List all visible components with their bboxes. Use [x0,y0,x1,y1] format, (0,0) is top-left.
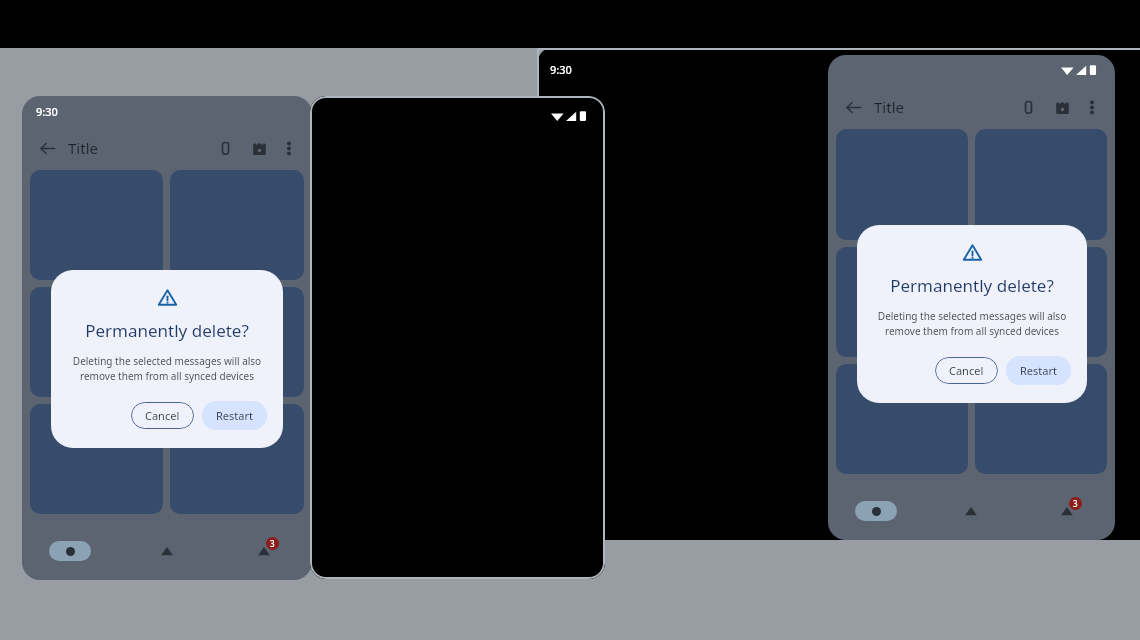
button[interactable] [975,247,1107,357]
staticText: Permanently delete? [85,319,249,342]
button[interactable]: Cancel [131,402,194,429]
staticText: Deleting the selected messages will also… [873,309,1071,338]
button[interactable]: Attach [1013,92,1043,122]
staticText: Restart [216,408,253,423]
button[interactable]: Back [838,92,868,122]
button[interactable] [975,129,1107,240]
button[interactable]: Home [22,522,118,580]
button[interactable]: Calendar [244,133,274,163]
staticText: 3 [270,538,275,549]
staticText: Permanently delete? [890,274,1054,297]
button[interactable] [836,364,968,474]
button[interactable]: More options [1079,94,1105,120]
button[interactable]: Alerts [118,522,215,580]
button[interactable] [836,129,968,240]
button[interactable] [170,287,304,397]
staticText: 9:30 [550,62,572,77]
button[interactable] [170,404,304,514]
button[interactable]: More options [276,135,302,161]
button[interactable]: Cancel [935,357,998,384]
staticText: 9:30 [36,104,58,119]
staticText: Cancel [949,363,984,378]
button[interactable]: Restart [202,401,267,430]
button[interactable]: Home [828,482,923,540]
button[interactable]: Notifications, 3 new [215,522,312,580]
staticText: Restart [1020,363,1057,378]
button[interactable]: Notifications, 3 new [1019,482,1115,540]
button[interactable] [30,170,163,280]
button[interactable]: Back [32,133,62,163]
button[interactable] [170,170,304,280]
button[interactable] [975,364,1107,474]
staticText: 3 [1073,498,1078,509]
button[interactable]: Alerts [923,482,1019,540]
button[interactable]: Attach [210,133,240,163]
staticText: Cancel [145,408,180,423]
staticText: Title [68,138,98,158]
staticText: Deleting the selected messages will also… [67,354,267,383]
button[interactable]: Calendar [1047,92,1077,122]
staticText: Title [874,97,904,117]
button[interactable]: Restart [1006,356,1071,385]
button[interactable] [30,287,163,397]
button[interactable] [836,247,968,357]
button[interactable] [30,404,163,514]
